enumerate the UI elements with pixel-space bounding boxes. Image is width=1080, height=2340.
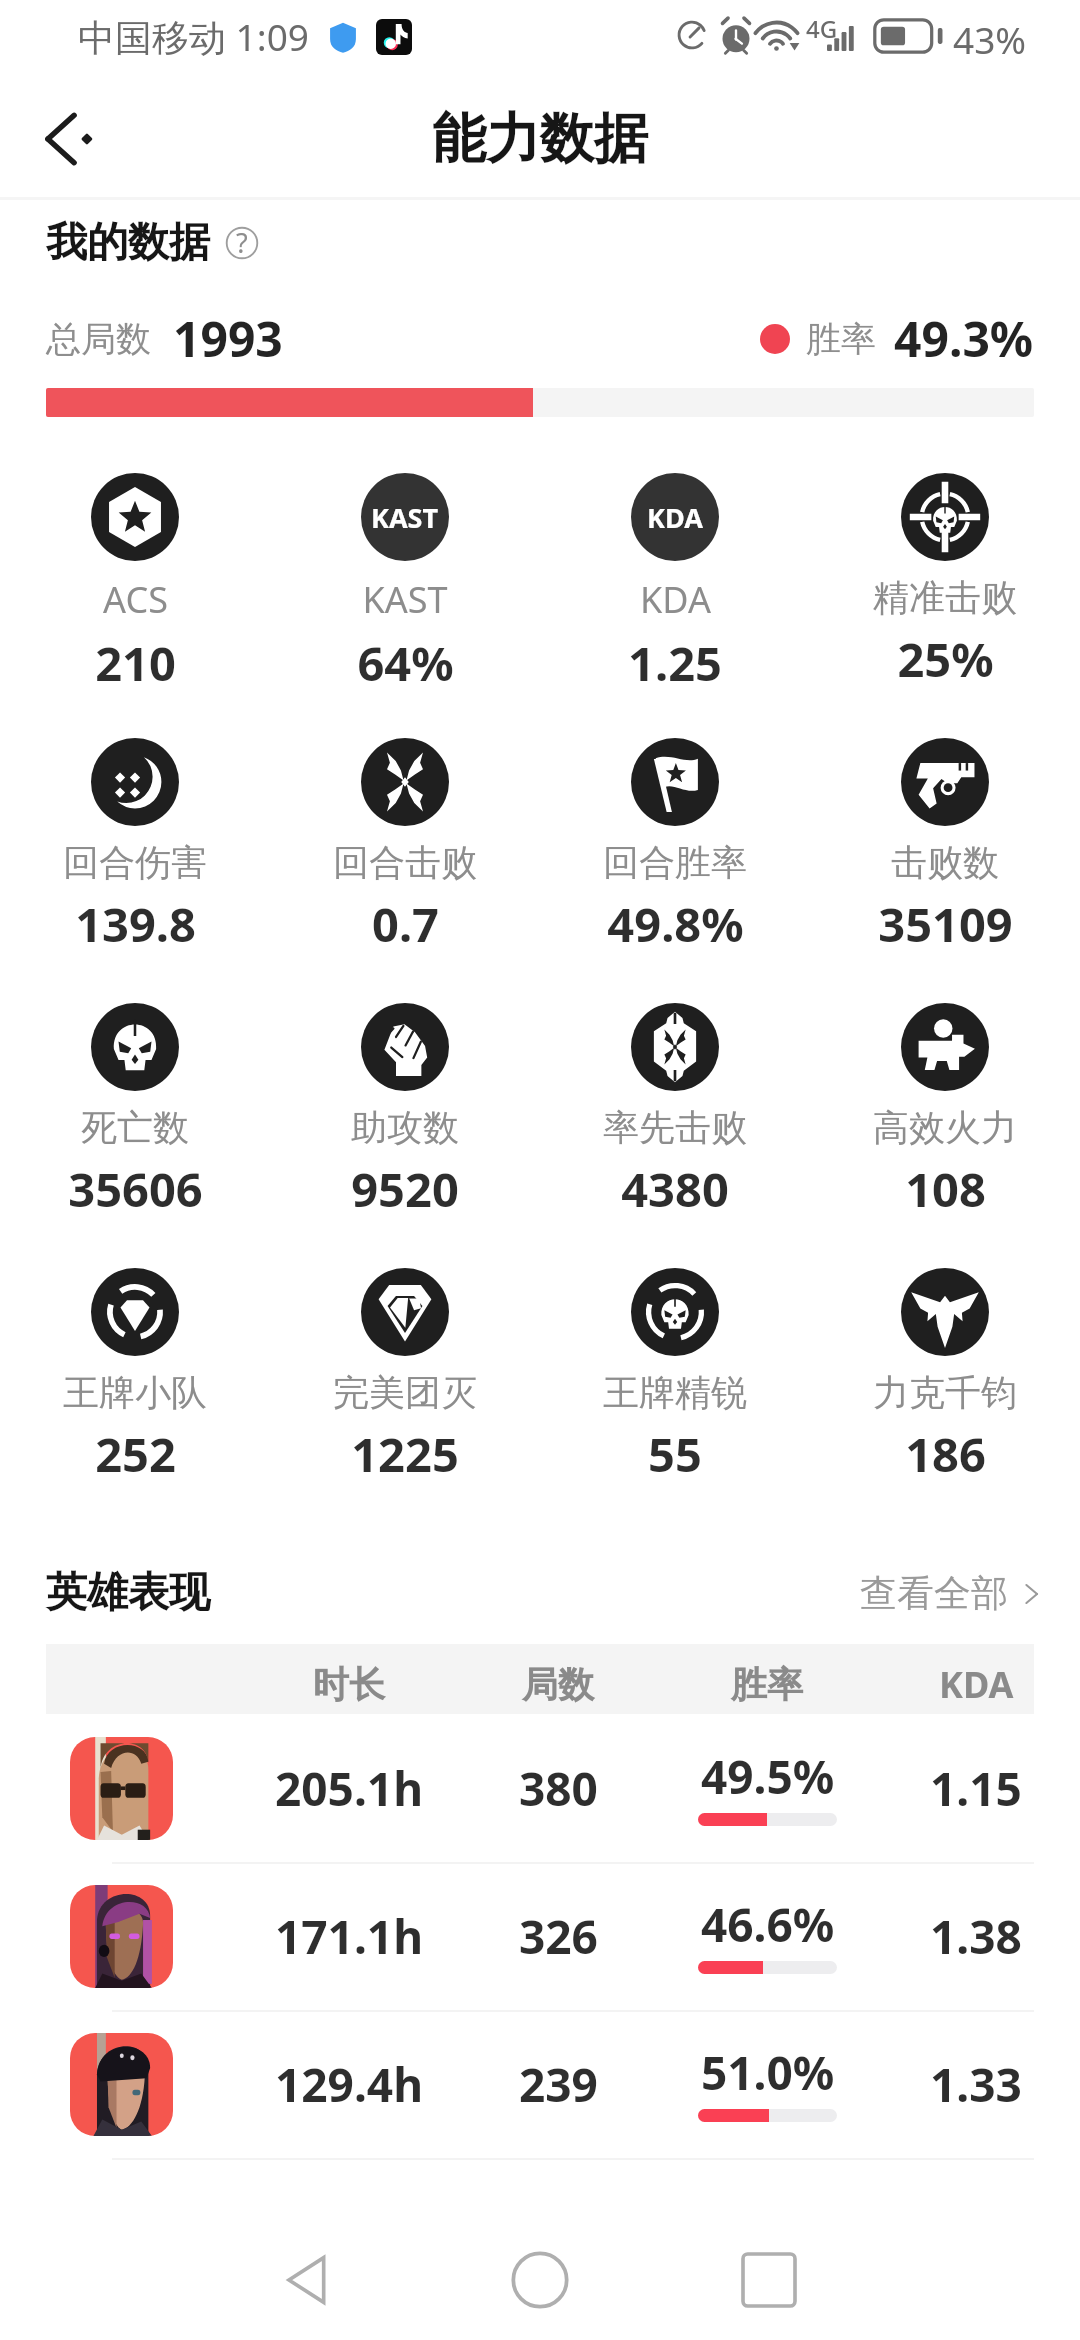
staticText: 55 — [648, 1422, 702, 1486]
staticText: 46.6% — [701, 1893, 835, 1956]
staticText: 129.4h — [275, 2053, 424, 2116]
staticText: 我的数据 — [46, 217, 210, 269]
staticText: 326 — [519, 1905, 598, 1968]
button[interactable]: 171.1h — [46, 1862, 1034, 2010]
staticText: 1225 — [351, 1422, 459, 1486]
staticText: 205.1h — [275, 1757, 424, 1820]
button[interactable]: 高效火力 — [810, 1003, 1080, 1221]
button[interactable]: 完美团灭 — [270, 1268, 540, 1486]
staticText: 4G — [806, 12, 838, 45]
staticText: 1.33 — [930, 2053, 1022, 2116]
staticText: 局数 — [522, 1662, 594, 1707]
button[interactable]: 助攻数 — [270, 1003, 540, 1221]
button[interactable]: Recents — [709, 2220, 829, 2340]
staticText: 210 — [95, 631, 176, 695]
staticText: 43% — [953, 14, 1027, 64]
staticText: 171.1h — [275, 1905, 424, 1968]
button[interactable]: 力克千钧 — [810, 1268, 1080, 1486]
staticText: 能力数据 — [432, 105, 648, 173]
staticText: 胜率 — [731, 1662, 803, 1707]
staticText: KAST — [371, 499, 439, 536]
staticText: 回合伤害 — [63, 840, 207, 885]
button[interactable]: 回合击败 — [270, 738, 540, 956]
staticText: ? — [236, 224, 248, 260]
button[interactable]: 回合胜率 — [540, 738, 810, 956]
button[interactable]: ACS — [0, 473, 270, 695]
staticText: 时长 — [313, 1662, 385, 1707]
button[interactable]: Back — [248, 2220, 368, 2340]
button[interactable]: Home — [480, 2220, 600, 2340]
staticText: 239 — [519, 2053, 598, 2116]
staticText: 率先击败 — [603, 1105, 747, 1150]
staticText: 252 — [95, 1422, 176, 1486]
staticText: 死亡数 — [81, 1105, 189, 1150]
staticText: 49.8% — [607, 892, 744, 956]
staticText: 中国移动 1:09 — [78, 11, 310, 62]
staticText: 1993 — [173, 306, 283, 371]
staticText: 35109 — [878, 892, 1013, 956]
staticText: 1.15 — [930, 1757, 1022, 1820]
staticText: 查看全部 — [860, 1570, 1008, 1617]
button[interactable]: 王牌精锐 — [540, 1268, 810, 1486]
button[interactable]: 129.4h — [46, 2010, 1034, 2158]
staticText: 49.5% — [701, 1745, 835, 1808]
button[interactable]: 死亡数 — [0, 1003, 270, 1221]
button[interactable]: KAST — [270, 473, 540, 695]
staticText: 4380 — [621, 1157, 729, 1221]
staticText: ACS — [103, 575, 168, 624]
staticText: 51.0% — [701, 2041, 835, 2104]
staticText: 总局数 — [46, 317, 151, 361]
staticText: 25% — [897, 627, 994, 691]
button[interactable]: Back — [26, 96, 112, 182]
staticText: 高效火力 — [873, 1105, 1017, 1150]
staticText: KAST — [362, 575, 448, 624]
staticText: 王牌小队 — [63, 1370, 207, 1415]
staticText: 1.38 — [930, 1905, 1022, 1968]
button[interactable]: 205.1h — [46, 1714, 1034, 1862]
staticText: 回合击败 — [333, 840, 477, 885]
staticText: 108 — [905, 1157, 986, 1221]
staticText: 9520 — [351, 1157, 459, 1221]
staticText: 助攻数 — [351, 1105, 459, 1150]
staticText: 回合胜率 — [603, 840, 747, 885]
staticText: KDA — [939, 1660, 1014, 1709]
button[interactable]: 查看全部 — [860, 1570, 1046, 1617]
staticText: 139.8 — [75, 892, 196, 956]
staticText: 49.3% — [894, 306, 1034, 371]
button[interactable]: 精准击败 — [810, 473, 1080, 691]
button[interactable]: KDA — [540, 473, 810, 695]
staticText: KDA — [647, 499, 703, 536]
staticText: 0.7 — [372, 892, 439, 956]
staticText: 完美团灭 — [333, 1370, 477, 1415]
staticText: 35606 — [68, 1157, 203, 1221]
staticText: 胜率 — [806, 317, 876, 361]
staticText: 186 — [905, 1422, 986, 1486]
staticText: 64% — [357, 631, 454, 695]
staticText: 1.25 — [628, 631, 722, 695]
staticText: 王牌精锐 — [603, 1370, 747, 1415]
staticText: 英雄表现 — [46, 1567, 210, 1619]
staticText: 380 — [519, 1757, 598, 1820]
staticText: 精准击败 — [873, 575, 1017, 620]
button[interactable]: Help — [224, 225, 260, 261]
staticText: 力克千钧 — [873, 1370, 1017, 1415]
staticText: 击败数 — [891, 840, 999, 885]
staticText: KDA — [640, 575, 711, 624]
button[interactable]: 王牌小队 — [0, 1268, 270, 1486]
button[interactable]: 击败数 — [810, 738, 1080, 956]
button[interactable]: 率先击败 — [540, 1003, 810, 1221]
button[interactable]: 回合伤害 — [0, 738, 270, 956]
